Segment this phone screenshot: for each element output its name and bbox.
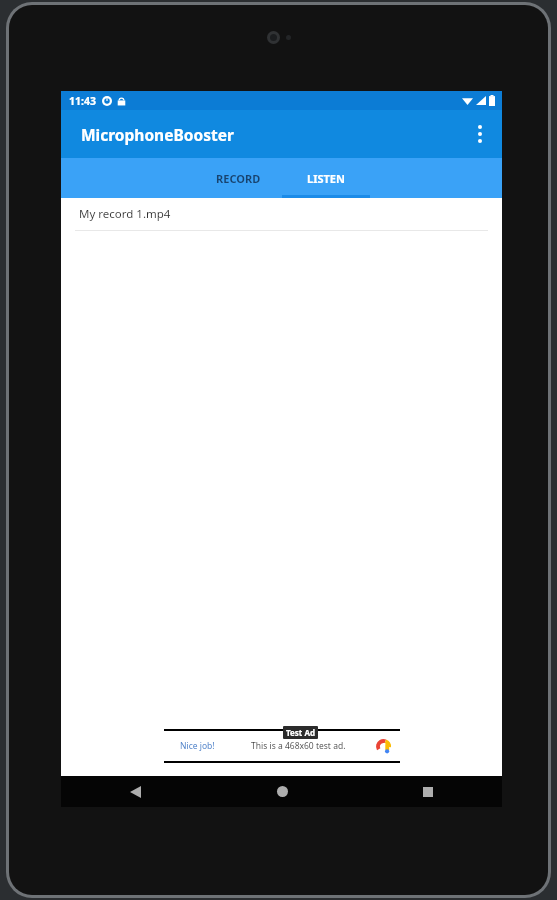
button[interactable]: Back bbox=[113, 776, 157, 807]
button[interactable]: More options bbox=[458, 112, 502, 156]
button[interactable]: Recent apps bbox=[406, 776, 450, 807]
button[interactable]: Nice job! bbox=[164, 729, 400, 763]
staticText: RECORD bbox=[216, 171, 261, 186]
staticText: LISTEN bbox=[307, 171, 345, 186]
staticText: MicrophoneBooster bbox=[81, 124, 234, 145]
staticText: Test Ad bbox=[286, 727, 315, 738]
button[interactable]: My record 1.mp4 bbox=[61, 198, 502, 231]
staticText: My record 1.mp4 bbox=[79, 206, 171, 222]
staticText: Nice job! bbox=[180, 740, 215, 752]
button[interactable]: Home bbox=[260, 776, 304, 807]
button[interactable]: LISTEN bbox=[282, 158, 370, 198]
button[interactable]: RECORD bbox=[194, 158, 282, 198]
staticText: 11:43 bbox=[69, 94, 96, 108]
staticText: This is a 468x60 test ad. bbox=[251, 740, 346, 752]
